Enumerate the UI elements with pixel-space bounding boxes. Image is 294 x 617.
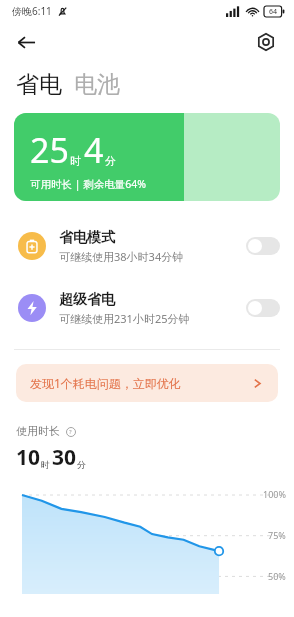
staticText: 电池 <box>74 70 120 99</box>
staticText: 可用时长 | 剩余电量64% <box>30 177 146 191</box>
staticText: 100% <box>263 488 286 500</box>
staticText: 4 <box>84 127 104 173</box>
button[interactable]: 省电模式 <box>0 223 294 269</box>
staticText: 分 <box>105 154 116 168</box>
staticText: 25 <box>30 127 69 173</box>
staticText: 使用时长 <box>16 424 60 438</box>
staticText: 省电 <box>16 70 62 99</box>
button[interactable]: 超级省电 <box>0 285 294 331</box>
button[interactable]: 发现1个耗电问题，立即优化 <box>16 364 278 402</box>
staticText: 分 <box>77 459 86 470</box>
staticText: 75% <box>268 529 286 541</box>
button[interactable]: 省电 <box>16 70 62 99</box>
staticText: 时 <box>70 154 81 168</box>
button[interactable]: Info <box>65 426 76 437</box>
staticText: 时 <box>41 459 50 470</box>
staticText: 64 <box>269 7 278 17</box>
button[interactable]: Toggle 超级省电 <box>246 299 280 317</box>
button[interactable]: Toggle 省电模式 <box>246 237 280 255</box>
staticText: 省电模式 <box>59 229 115 247</box>
staticText: 可继续使用38小时34分钟 <box>59 249 184 264</box>
button[interactable]: Settings <box>250 26 282 58</box>
staticText: 发现1个耗电问题，立即优化 <box>30 375 181 391</box>
button[interactable]: Back <box>10 26 42 58</box>
staticText: ? <box>69 428 72 436</box>
staticText: 50% <box>268 570 286 582</box>
staticText: 10 <box>16 443 41 472</box>
button[interactable]: 电池 <box>74 70 120 99</box>
staticText: 30 <box>52 443 77 472</box>
staticText: 可继续使用231小时25分钟 <box>59 311 190 326</box>
button[interactable]: 25 <box>14 113 280 201</box>
staticText: 傍晚6:11 <box>12 4 52 18</box>
staticText: 超级省电 <box>59 291 115 309</box>
